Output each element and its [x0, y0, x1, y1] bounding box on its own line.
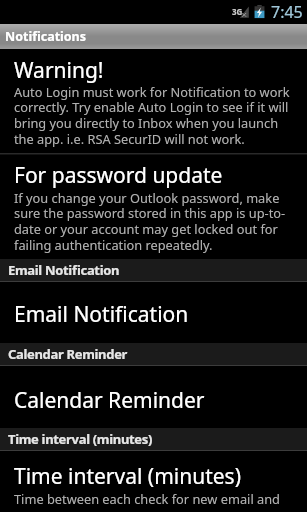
staticText: Calendar Reminder [8, 345, 128, 363]
staticText: Time between each check for new email an… [14, 490, 295, 507]
staticText: Time interval (minutes) [14, 462, 295, 491]
staticText: Email Notification [8, 261, 120, 279]
other: 3G signal [232, 4, 249, 20]
staticText: 3G [232, 6, 243, 17]
staticText: Email Notification [14, 300, 295, 329]
button[interactable]: Time interval (minutes) [0, 451, 307, 512]
staticText: 7:45 [271, 1, 303, 23]
button[interactable]: For password update [0, 155, 307, 259]
staticText: If you change your Outlook password, mak… [14, 189, 295, 254]
staticText: Calendar Reminder [14, 386, 295, 415]
other: Battery charging [254, 4, 265, 20]
staticText: Time interval (minutes) [8, 430, 153, 448]
staticText: Warning! [14, 56, 295, 85]
button[interactable]: Calendar Reminder [0, 366, 307, 428]
button[interactable]: Email Notification [0, 282, 307, 343]
staticText: For password update [14, 161, 295, 190]
staticText: Auto Login must work for Notification to… [14, 83, 295, 148]
staticText: Notifications [5, 28, 87, 45]
button[interactable]: Warning! [0, 49, 307, 153]
